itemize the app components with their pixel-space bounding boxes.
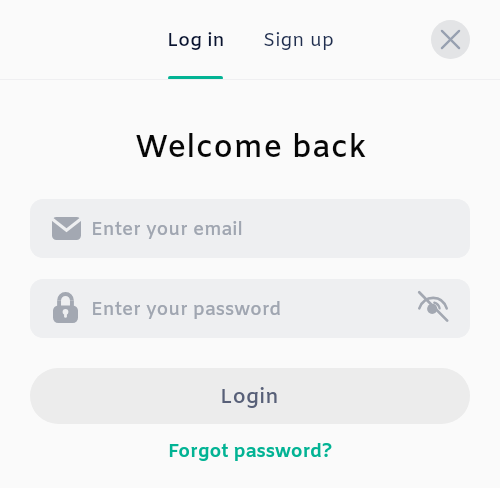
button[interactable]: Close [431,20,470,59]
staticText: Login [220,384,279,412]
staticText: Enter your email [91,218,243,243]
button[interactable]: Forgot password? [0,438,500,466]
button[interactable]: Sign up [256,25,328,63]
button[interactable]: Login [30,368,470,424]
button[interactable]: Enter your password [30,279,470,338]
staticText: Forgot password? [168,440,333,465]
staticText: Welcome back [1,128,500,169]
staticText: Enter your password [91,298,282,323]
staticText: Log in [167,28,225,53]
staticText: Sign up [263,28,335,53]
button[interactable]: Log in [161,25,219,63]
button[interactable]: Enter your email [30,199,470,258]
button[interactable]: Show password [399,279,467,338]
